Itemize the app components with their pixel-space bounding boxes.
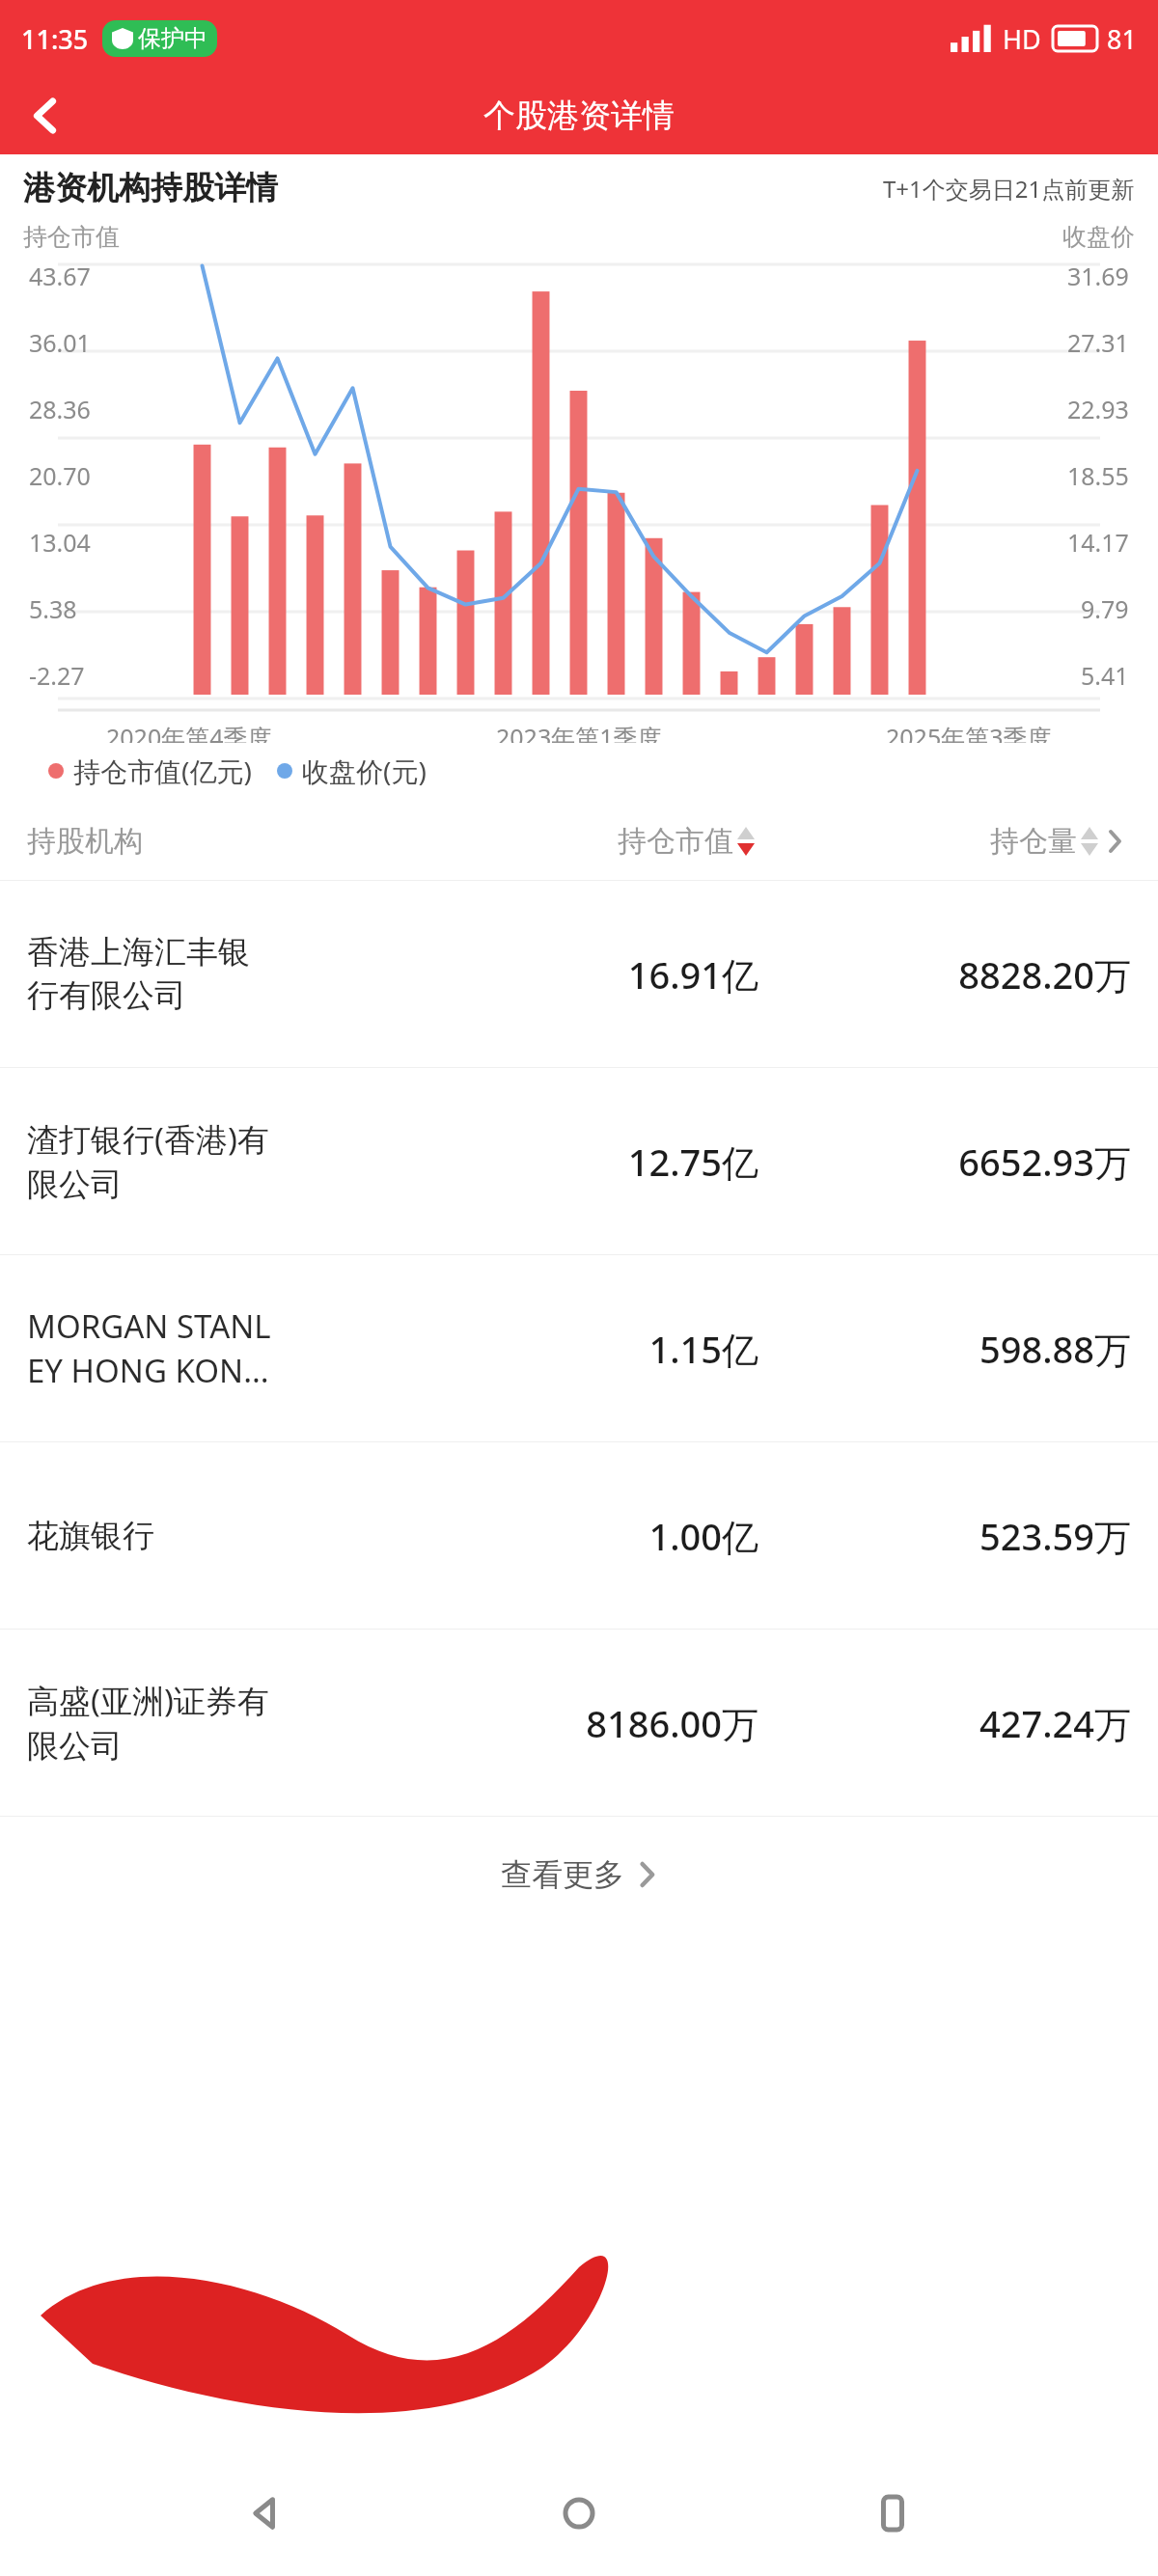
staticText: 8828.20万 bbox=[958, 949, 1131, 1000]
staticText: 持仓市值 bbox=[23, 222, 120, 252]
button[interactable]: Recents bbox=[844, 2465, 941, 2562]
staticText: 43.67 bbox=[29, 260, 91, 292]
staticText: 个股港资详情 bbox=[483, 96, 675, 136]
staticText: 18.55 bbox=[1067, 459, 1129, 492]
button[interactable]: Back bbox=[217, 2465, 314, 2562]
staticText: 36.01 bbox=[29, 326, 91, 359]
staticText: 22.93 bbox=[1067, 393, 1129, 425]
staticText: 渣打银行(香港)有 限公司 bbox=[27, 1117, 269, 1205]
button[interactable]: 持仓量 bbox=[755, 823, 1098, 860]
button[interactable]: 香港上海汇丰银 行有限公司 bbox=[0, 881, 1158, 1067]
staticText: 花旗银行 bbox=[27, 1516, 154, 1556]
staticText: MORGAN STANL EY HONG KON... bbox=[27, 1304, 271, 1392]
staticText: 1.00亿 bbox=[648, 1511, 758, 1561]
staticText: 11:35 bbox=[21, 21, 89, 57]
staticText: 81 bbox=[1107, 21, 1137, 57]
staticText: -2.27 bbox=[29, 659, 85, 692]
staticText: 9.79 bbox=[1081, 592, 1129, 625]
staticText: 14.17 bbox=[1067, 526, 1129, 559]
button[interactable]: 渣打银行(香港)有 限公司 bbox=[0, 1068, 1158, 1254]
button[interactable]: 花旗银行 bbox=[0, 1442, 1158, 1629]
staticText: 持股机构 bbox=[27, 823, 143, 860]
staticText: 523.59万 bbox=[979, 1511, 1131, 1561]
staticText: 持仓量 bbox=[990, 823, 1077, 860]
staticText: 598.88万 bbox=[979, 1324, 1131, 1374]
staticText: 12.75亿 bbox=[627, 1137, 758, 1187]
staticText: 查看更多 bbox=[501, 1855, 624, 1894]
staticText: 5.41 bbox=[1081, 659, 1129, 692]
staticText: 保护中 bbox=[138, 24, 207, 53]
button[interactable]: 高盛(亚洲)证券有 限公司 bbox=[0, 1630, 1158, 1816]
staticText: 8186.00万 bbox=[586, 1698, 758, 1748]
button[interactable]: Back bbox=[14, 83, 79, 149]
staticText: 31.69 bbox=[1067, 260, 1129, 292]
staticText: 27.31 bbox=[1067, 326, 1129, 359]
other: More columns bbox=[1098, 832, 1131, 851]
staticText: 13.04 bbox=[29, 526, 91, 559]
button[interactable]: MORGAN STANL EY HONG KON... bbox=[0, 1255, 1158, 1441]
staticText: T+1个交易日21点前更新 bbox=[883, 173, 1135, 205]
staticText: 5.38 bbox=[29, 592, 77, 625]
staticText: 2023年第1季度 bbox=[496, 721, 662, 743]
staticText: 香港上海汇丰银 行有限公司 bbox=[27, 932, 250, 1016]
button[interactable]: 持仓市值 bbox=[425, 823, 755, 860]
staticText: 28.36 bbox=[29, 393, 91, 425]
staticText: 持仓市值 bbox=[618, 823, 733, 860]
staticText: 1.15亿 bbox=[648, 1324, 758, 1374]
staticText: 收盘价(元) bbox=[302, 753, 427, 789]
staticText: HD bbox=[1003, 21, 1041, 57]
staticText: 港资机构持股详情 bbox=[23, 168, 278, 208]
staticText: 高盛(亚洲)证券有 限公司 bbox=[27, 1679, 269, 1767]
staticText: 20.70 bbox=[29, 459, 91, 492]
staticText: 6652.93万 bbox=[958, 1137, 1131, 1187]
staticText: 收盘价 bbox=[1062, 222, 1135, 252]
staticText: 2020年第4季度 bbox=[106, 721, 272, 743]
staticText: 持仓市值(亿元) bbox=[73, 753, 252, 789]
staticText: 2025年第3季度 bbox=[886, 721, 1052, 743]
button[interactable]: Home bbox=[531, 2465, 627, 2562]
staticText: 427.24万 bbox=[979, 1698, 1131, 1748]
staticText: 16.91亿 bbox=[627, 949, 758, 1000]
button[interactable]: 查看更多 bbox=[0, 1817, 1158, 1932]
